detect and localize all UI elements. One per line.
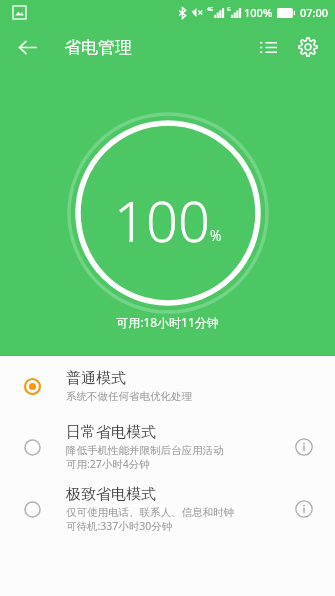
button[interactable]: List [249,28,287,66]
button[interactable]: 普通模式 [0,356,335,416]
staticText: 可待机:337小时30分钟 [66,519,173,533]
button[interactable]: Settings [289,28,327,66]
button[interactable]: Back [8,28,46,66]
staticText: G [227,6,231,13]
staticText: 07:00 [300,5,329,20]
staticText: 系统不做任何省电优化处理 [66,390,192,403]
staticText: 可用:18小时11分钟 [116,314,219,330]
button[interactable]: 极致省电模式 [0,478,335,540]
staticText: 降低手机性能并限制后台应用活动 [66,444,224,457]
staticText: 省电管理 [64,37,132,58]
button[interactable]: Info [287,430,321,464]
button[interactable]: 日常省电模式 [0,416,335,478]
staticText: 仅可使用电话、联系人、信息和时钟 [66,506,234,519]
staticText: 极致省电模式 [66,485,156,504]
button[interactable]: Info [287,492,321,526]
staticText: 普通模式 [66,369,126,388]
staticText: % [210,226,222,245]
staticText: 100% [244,5,273,20]
staticText: 4G [207,6,214,13]
staticText: 可用:27小时4分钟 [66,457,150,471]
staticText: 100 [114,182,210,258]
staticText: 日常省电模式 [66,423,156,442]
